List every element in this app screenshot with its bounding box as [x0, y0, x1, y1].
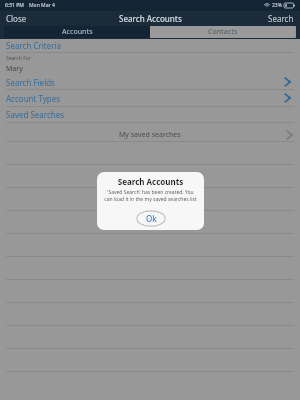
staticText: 'Saved Search' has been created. You can…	[104, 189, 197, 203]
staticText: Ok	[146, 213, 157, 224]
button[interactable]: Ok	[136, 210, 166, 227]
button[interactable]: Search Fields	[0, 75, 300, 89]
staticText: Contacts	[208, 27, 238, 37]
button[interactable]: My saved searches	[0, 128, 300, 141]
staticText: My saved searches	[119, 130, 181, 140]
staticText: Mon Mar 4	[29, 2, 55, 9]
button[interactable]: Accounts	[4, 26, 150, 38]
staticText: 6:51 PM	[5, 2, 24, 9]
button[interactable]: Account Types	[0, 90, 300, 106]
staticText: Close	[6, 13, 27, 24]
staticText: Search	[268, 13, 294, 24]
staticText: Search For	[6, 55, 31, 62]
staticText: Account Types	[6, 93, 61, 104]
staticText: Search Accounts	[104, 176, 197, 187]
button[interactable]: Search	[268, 11, 294, 26]
staticText: Saved Searches	[6, 109, 65, 120]
button[interactable]: Close	[6, 11, 27, 26]
staticText: Search Criteria	[6, 40, 62, 51]
staticText: 23%	[272, 2, 282, 9]
staticText: Accounts	[62, 27, 93, 37]
staticText: Mary	[6, 64, 23, 74]
button[interactable]: Contacts	[150, 26, 296, 38]
staticText: Search Fields	[6, 77, 55, 88]
staticText: Search Accounts	[119, 13, 182, 24]
